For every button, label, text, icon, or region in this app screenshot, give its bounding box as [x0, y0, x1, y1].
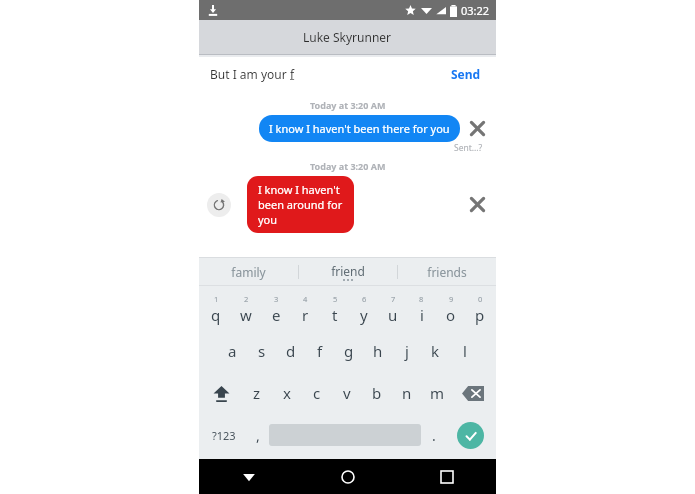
staticText: y	[360, 305, 368, 325]
staticText: family	[231, 264, 266, 280]
button[interactable]: I know I haven't been there for you	[259, 115, 460, 142]
button[interactable]: 4	[291, 288, 320, 330]
staticText: t	[332, 305, 338, 325]
staticText: i	[420, 305, 424, 325]
button[interactable]: k	[421, 330, 450, 372]
staticText: 6	[362, 294, 367, 304]
button[interactable]: Period	[421, 414, 447, 456]
button[interactable]: 7	[378, 288, 407, 330]
staticText: 1	[214, 294, 219, 304]
button[interactable]: Delete message	[468, 119, 487, 138]
button[interactable]: a	[217, 330, 247, 372]
staticText: Sent...?	[454, 142, 483, 154]
button[interactable]: 6	[349, 288, 378, 330]
staticText: n	[402, 383, 412, 403]
staticText: 5	[333, 294, 338, 304]
staticText: k	[431, 341, 440, 361]
staticText: friends	[427, 264, 467, 280]
button[interactable]: v	[332, 372, 362, 414]
button[interactable]: 5	[320, 288, 349, 330]
staticText: b	[372, 383, 382, 403]
staticText: j	[405, 341, 409, 361]
button[interactable]: b	[362, 372, 392, 414]
staticText: z	[253, 383, 261, 403]
staticText: 9	[449, 294, 454, 304]
button[interactable]: 9	[436, 288, 465, 330]
button[interactable]: 8	[407, 288, 436, 330]
button[interactable]: f	[305, 330, 334, 372]
button[interactable]: family	[199, 258, 298, 285]
button[interactable]: m	[422, 372, 452, 414]
staticText: r	[302, 305, 309, 325]
button[interactable]: Luke Skyrunner	[199, 20, 496, 54]
staticText: Send	[451, 66, 481, 82]
button[interactable]: 2	[231, 288, 261, 330]
staticText: a	[228, 341, 237, 361]
button[interactable]: Home	[298, 459, 397, 494]
button[interactable]: Retry sending	[207, 193, 231, 217]
button[interactable]: Comma	[246, 414, 269, 456]
staticText: m	[430, 383, 445, 403]
staticText: ,	[256, 426, 260, 445]
button[interactable]: friends	[398, 258, 496, 285]
button[interactable]: n	[392, 372, 422, 414]
staticText: 2	[244, 294, 249, 304]
button[interactable]: Send	[457, 422, 484, 449]
staticText: g	[344, 341, 354, 361]
button[interactable]: friend	[299, 258, 397, 285]
staticText: Today at 3:20 AM	[310, 99, 386, 111]
staticText: I know I haven't been there for you	[269, 121, 450, 136]
staticText: x	[283, 383, 291, 403]
button[interactable]: Back	[199, 459, 298, 494]
button[interactable]: Send	[447, 62, 485, 86]
staticText: 03:22	[461, 3, 490, 18]
staticText: But I am your	[210, 66, 290, 82]
button[interactable]: 0	[465, 288, 494, 330]
staticText: w	[240, 305, 252, 325]
button[interactable]: x	[272, 372, 302, 414]
staticText: I know I haven't been around for you	[258, 182, 343, 227]
staticText: l	[463, 341, 467, 361]
staticText: 4	[303, 294, 308, 304]
button[interactable]: ?123	[201, 414, 246, 456]
staticText: h	[373, 341, 383, 361]
button[interactable]: 1	[201, 288, 231, 330]
button[interactable]: Recent apps	[397, 459, 496, 494]
staticText: ?123	[212, 428, 236, 443]
staticText: c	[313, 383, 321, 403]
staticText: f	[317, 341, 323, 361]
staticText: 0	[478, 294, 483, 304]
staticText: .	[432, 426, 436, 445]
staticText: Luke Skyrunner	[303, 29, 392, 45]
button[interactable]: j	[392, 330, 421, 372]
button[interactable]: Shift	[201, 372, 242, 414]
staticText: p	[475, 305, 485, 325]
button[interactable]: l	[450, 330, 479, 372]
staticText: u	[388, 305, 398, 325]
staticText: s	[258, 341, 266, 361]
staticText: e	[272, 305, 281, 325]
button[interactable]: 3	[261, 288, 291, 330]
button[interactable]: I know I haven't been around for you	[247, 176, 354, 233]
staticText: o	[446, 305, 456, 325]
staticText: f	[290, 66, 295, 82]
button[interactable]: Backspace	[452, 372, 494, 414]
button[interactable]: c	[302, 372, 332, 414]
button[interactable]: z	[242, 372, 272, 414]
staticText: q	[211, 305, 221, 325]
button[interactable]: g	[334, 330, 363, 372]
button[interactable]: s	[247, 330, 276, 372]
staticText: 7	[391, 294, 396, 304]
staticText: 8	[419, 294, 424, 304]
button[interactable]: Delete message	[468, 195, 487, 214]
button[interactable]: d	[276, 330, 305, 372]
staticText: Today at 3:20 AM	[310, 160, 386, 172]
staticText: v	[343, 383, 351, 403]
button[interactable]: But I am your	[210, 66, 447, 82]
staticText: d	[286, 341, 296, 361]
button[interactable]: h	[363, 330, 392, 372]
staticText: friend	[331, 263, 365, 279]
staticText: 3	[274, 294, 279, 304]
